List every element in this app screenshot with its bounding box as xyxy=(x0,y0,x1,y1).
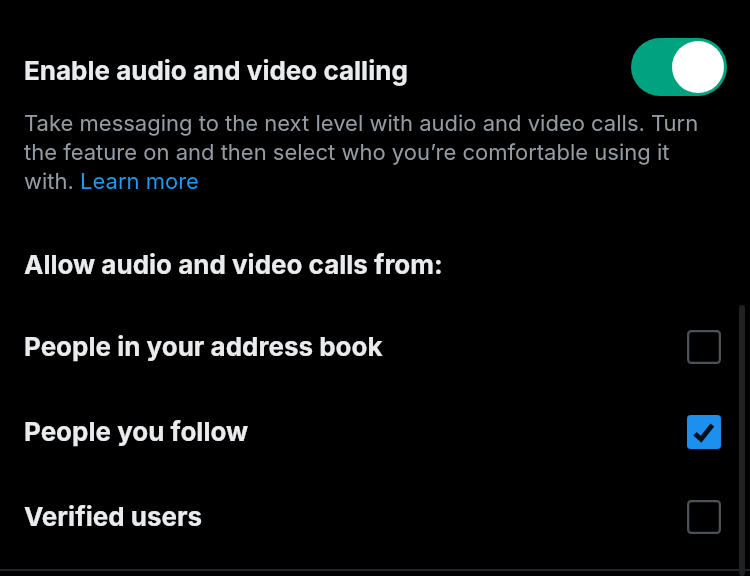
button[interactable]: People you follow, checked xyxy=(687,415,721,449)
button[interactable]: Learn more xyxy=(80,166,200,196)
button[interactable]: People you follow xyxy=(0,389,750,474)
button[interactable]: Enable audio and video calling toggle xyxy=(631,38,727,96)
staticText: Enable audio and video calling xyxy=(24,55,408,86)
button[interactable]: Verified users, not checked xyxy=(687,500,721,534)
staticText: People in your address book xyxy=(24,331,383,362)
button[interactable]: People in your address book, not checked xyxy=(687,330,721,364)
button[interactable]: Verified users xyxy=(0,474,750,559)
staticText: People you follow xyxy=(24,416,249,447)
staticText: Take messaging to the next level with au… xyxy=(24,108,738,195)
staticText: Allow audio and video calls from: xyxy=(24,249,443,280)
button[interactable]: People in your address book xyxy=(0,304,750,389)
staticText: Verified users xyxy=(24,501,203,532)
